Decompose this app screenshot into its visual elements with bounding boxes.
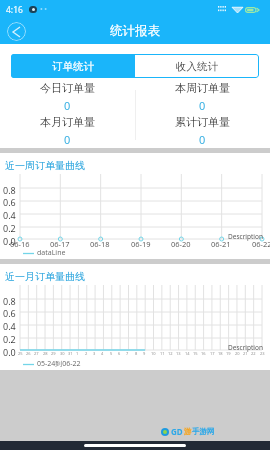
staticText: 0.2: [3, 222, 16, 234]
staticText: 28: [43, 351, 48, 356]
staticText: 0.2: [3, 333, 16, 345]
staticText: 近一周订单量曲线: [5, 159, 85, 172]
staticText: 6: [118, 351, 121, 356]
staticText: 0: [199, 98, 206, 113]
staticText: 06-20: [171, 239, 191, 249]
staticText: 06-16: [10, 239, 30, 249]
staticText: 14: [185, 351, 190, 356]
staticText: 21: [243, 351, 248, 356]
staticText: 20: [235, 351, 240, 356]
button[interactable]: 订单统计: [11, 54, 135, 78]
staticText: 收入统计: [176, 60, 218, 73]
button[interactable]: Back: [7, 22, 26, 41]
staticText: 0.8: [3, 295, 16, 307]
staticText: 23: [260, 351, 265, 356]
staticText: 0.0: [3, 235, 16, 247]
staticText: 7: [126, 351, 129, 356]
staticText: 近一月订单量曲线: [5, 270, 85, 283]
staticText: 0.8: [3, 184, 16, 196]
staticText: 27: [34, 351, 39, 356]
staticText: 5: [110, 351, 113, 356]
button[interactable]: 今日订单量: [0, 80, 135, 114]
staticText: 本月订单量: [40, 115, 95, 129]
staticText: 统计报表: [110, 23, 160, 39]
staticText: 1: [76, 351, 79, 356]
staticText: 2: [85, 351, 88, 356]
staticText: 30: [60, 351, 65, 356]
staticText: 29: [51, 351, 56, 356]
staticText: 06-17: [50, 239, 70, 249]
staticText: 4:16: [6, 4, 23, 16]
staticText: 0.4: [3, 320, 16, 332]
staticText: 05-24到06-22: [37, 359, 81, 369]
staticText: 06-18: [90, 239, 110, 249]
staticText: 0.6: [3, 307, 16, 319]
staticText: 3: [93, 351, 96, 356]
button[interactable]: 累计订单量: [135, 114, 270, 148]
staticText: 06-21: [211, 239, 231, 249]
staticText: 9: [143, 351, 146, 356]
staticText: 15: [193, 351, 198, 356]
staticText: 19: [226, 351, 231, 356]
staticText: 0.0: [3, 346, 16, 358]
staticText: 手游网: [192, 427, 215, 436]
staticText: 12: [168, 351, 173, 356]
staticText: 0: [64, 132, 71, 147]
staticText: 22: [251, 351, 256, 356]
staticText: 4: [101, 351, 104, 356]
staticText: 0: [199, 132, 206, 147]
staticText: 今日订单量: [40, 81, 95, 95]
staticText: 26: [26, 351, 31, 356]
staticText: 17: [210, 351, 215, 356]
staticText: 游: [184, 427, 192, 436]
staticText: GD: [171, 426, 183, 437]
staticText: 13: [176, 351, 181, 356]
staticText: 18: [218, 351, 223, 356]
staticText: dataLine: [37, 248, 66, 258]
button[interactable]: 收入统计: [135, 54, 259, 78]
staticText: 累计订单量: [175, 115, 230, 129]
staticText: 0.4: [3, 209, 16, 221]
button[interactable]: 本月订单量: [0, 114, 135, 148]
staticText: 8: [135, 351, 138, 356]
staticText: 25: [18, 351, 23, 356]
staticText: 本周订单量: [175, 81, 230, 95]
button[interactable]: 本周订单量: [135, 80, 270, 114]
staticText: Description: [228, 343, 263, 352]
staticText: 16: [201, 351, 206, 356]
staticText: 11: [160, 351, 165, 356]
staticText: Description: [228, 232, 263, 241]
staticText: 31: [68, 351, 73, 356]
staticText: 0: [64, 98, 71, 113]
staticText: 订单统计: [52, 60, 94, 73]
staticText: 0.6: [3, 196, 16, 208]
staticText: 06-22: [252, 239, 270, 249]
staticText: 06-19: [131, 239, 151, 249]
staticText: 10: [151, 351, 156, 356]
